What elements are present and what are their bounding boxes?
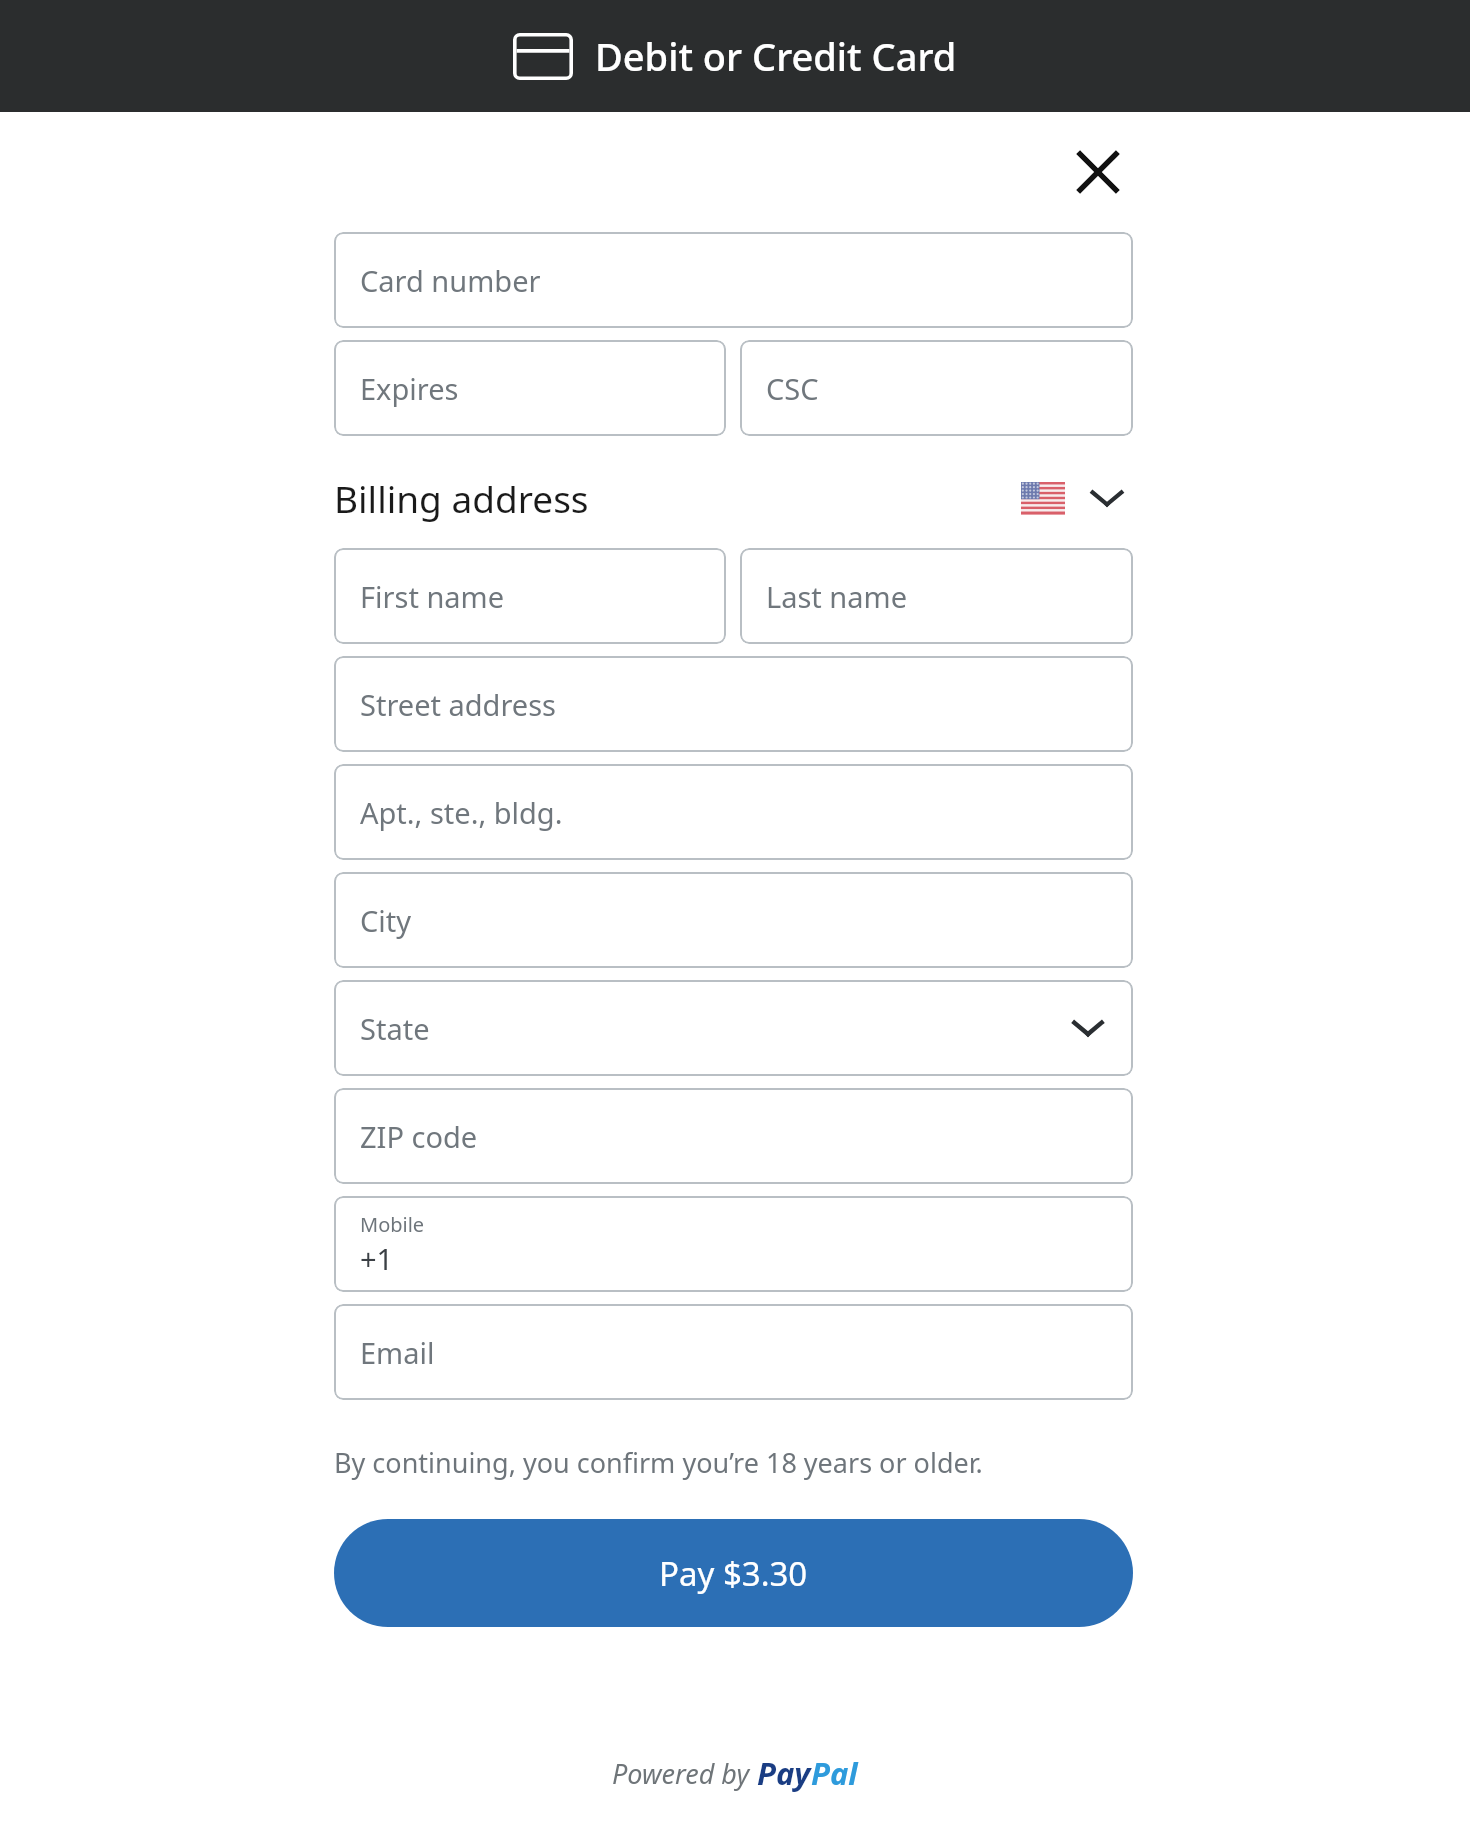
button[interactable]: CSC (740, 340, 1133, 436)
button[interactable]: ZIP code (334, 1088, 1133, 1184)
staticText: Apt., ste., bldg. (360, 793, 563, 832)
staticText: Email (360, 1333, 435, 1372)
staticText: Powered by (612, 1755, 757, 1792)
staticText: By continuing, you confirm you’re 18 yea… (334, 1444, 983, 1481)
staticText: Pal (811, 1752, 858, 1794)
button[interactable]: Select country (1015, 472, 1133, 524)
button[interactable]: Close (1063, 137, 1133, 207)
staticText: City (360, 901, 412, 940)
staticText: Pay $3.30 (659, 1551, 808, 1596)
button[interactable]: Last name (740, 548, 1133, 644)
button[interactable]: State (334, 980, 1133, 1076)
button[interactable]: Pay $3.30 (334, 1519, 1133, 1627)
staticText: Billing address (334, 473, 589, 523)
button[interactable]: City (334, 872, 1133, 968)
staticText: First name (360, 577, 505, 616)
staticText: ZIP code (360, 1117, 478, 1156)
staticText: Last name (766, 577, 908, 616)
staticText: Street address (360, 685, 556, 724)
staticText: Pay (757, 1752, 811, 1794)
button[interactable]: Mobile (334, 1196, 1133, 1292)
staticText: Card number (360, 261, 541, 300)
button[interactable]: Apt., ste., bldg. (334, 764, 1133, 860)
button[interactable]: Email (334, 1304, 1133, 1400)
button[interactable]: Street address (334, 656, 1133, 752)
button[interactable]: Expires (334, 340, 726, 436)
staticText: Mobile (360, 1211, 425, 1238)
staticText: State (360, 1009, 430, 1048)
staticText: Debit or Credit Card (595, 30, 957, 82)
staticText: +1 (360, 1239, 394, 1278)
button[interactable]: First name (334, 548, 726, 644)
staticText: Expires (360, 369, 459, 408)
staticText: CSC (766, 369, 819, 408)
button[interactable]: Card number (334, 232, 1133, 328)
